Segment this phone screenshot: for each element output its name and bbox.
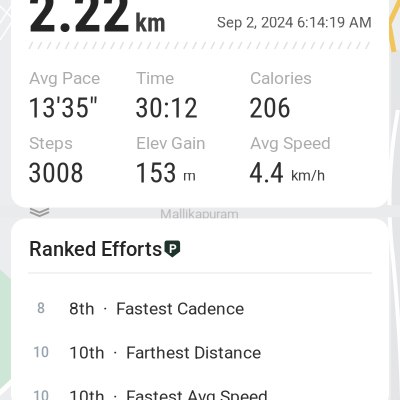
staticText: P xyxy=(169,242,177,256)
button[interactable]: 10 xyxy=(11,330,389,374)
button[interactable]: 8 xyxy=(11,286,389,330)
staticText: 4.4 xyxy=(249,156,284,189)
staticText: 10th · Farthest Distance xyxy=(69,342,261,363)
staticText: m xyxy=(183,167,196,184)
staticText: 8th · Fastest Cadence xyxy=(69,298,244,319)
button[interactable]: 10 xyxy=(11,374,389,400)
staticText: 13'35" xyxy=(28,91,98,124)
staticText: 2.22 xyxy=(28,0,131,45)
staticText: km/h xyxy=(291,167,325,184)
staticText: 10 xyxy=(33,344,49,361)
staticText: 206 xyxy=(249,91,291,124)
staticText: km xyxy=(135,8,166,38)
staticText: Time xyxy=(136,68,174,88)
staticText: 153 xyxy=(135,156,177,189)
staticText: 3008 xyxy=(28,156,84,189)
staticText: Ranked Efforts xyxy=(29,237,162,261)
staticText: 10 xyxy=(33,388,49,400)
staticText: 30:12 xyxy=(135,91,198,124)
staticText: Mallikapuram xyxy=(160,206,239,222)
staticText: Avg Pace xyxy=(29,68,100,88)
staticText: Elev Gain xyxy=(136,133,206,153)
staticText: Sep 2, 2024 6:14:19 AM xyxy=(217,14,372,31)
staticText: Steps xyxy=(29,133,73,153)
staticText: Calories xyxy=(250,68,312,88)
staticText: Avg Speed xyxy=(250,133,331,153)
staticText: 8 xyxy=(37,300,45,317)
staticText: 10th · Fastest Avg Speed xyxy=(69,386,268,400)
